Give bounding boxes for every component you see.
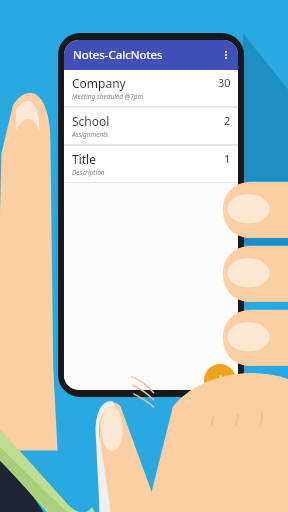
button[interactable]: Title: [64, 146, 238, 182]
staticText: Description: [72, 168, 105, 177]
staticText: 1: [224, 151, 231, 166]
staticText: Meeting sheduled @7pm: [72, 92, 144, 101]
staticText: Assignments: [72, 130, 109, 139]
staticText: School: [72, 113, 110, 129]
button[interactable]: School: [64, 108, 238, 144]
staticText: Notes-CalcNotes: [73, 47, 218, 63]
button[interactable]: Company: [64, 70, 238, 106]
staticText: 30: [218, 75, 231, 90]
staticText: Title: [72, 151, 96, 167]
button[interactable]: Add note: [204, 364, 236, 396]
staticText: Company: [72, 75, 126, 91]
button[interactable]: More options: [218, 47, 234, 63]
staticText: 2: [224, 113, 231, 128]
